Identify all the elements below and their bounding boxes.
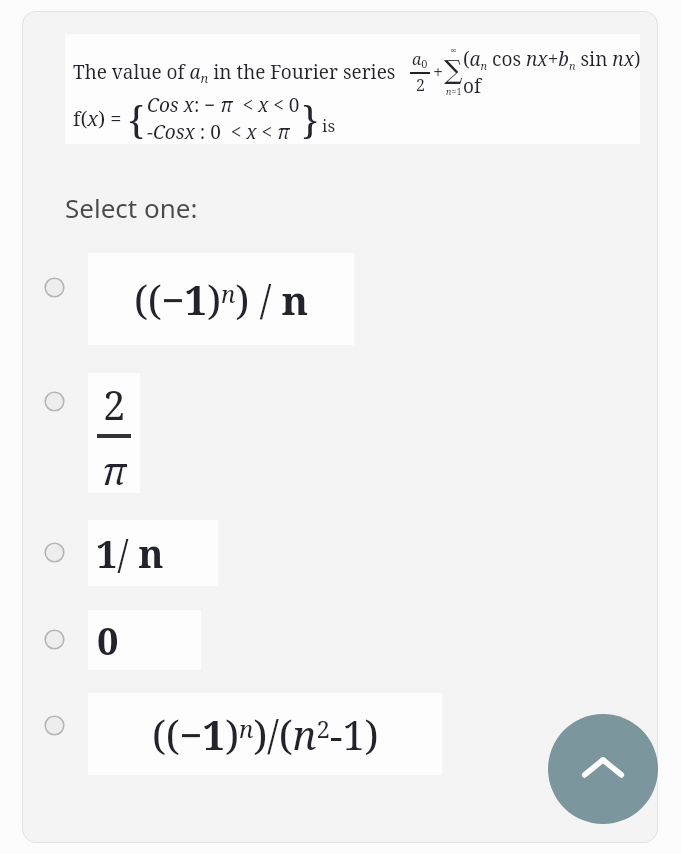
staticText: 2 xyxy=(416,74,425,96)
staticText: a0 xyxy=(412,48,428,72)
staticText: Select one: xyxy=(65,190,198,225)
staticText: n=1 xyxy=(446,85,462,97)
staticText: } xyxy=(302,93,319,145)
staticText: 1/ n xyxy=(96,527,164,579)
staticText: is xyxy=(322,114,336,137)
staticText: Cos x: − π < x < 0 xyxy=(147,92,300,118)
button[interactable]: ((−1)n)/(n2-1) xyxy=(22,693,658,775)
staticText: (an cos nx+bn sin nx) of xyxy=(463,46,648,99)
staticText: ∑ xyxy=(444,55,463,85)
staticText: ∞ xyxy=(450,46,457,55)
staticText: f(x) = xyxy=(73,105,122,132)
staticText: π xyxy=(102,444,127,493)
button[interactable]: 0 xyxy=(22,610,658,670)
button[interactable]: 2 xyxy=(22,373,658,493)
staticText: { xyxy=(128,93,145,145)
staticText: ((−1)n)/(n2-1) xyxy=(152,707,379,761)
staticText: 0 xyxy=(97,614,119,666)
staticText: 2 xyxy=(103,377,126,431)
staticText: + xyxy=(433,60,444,85)
staticText: ((−1)n) / n xyxy=(134,272,309,326)
button[interactable]: Scroll to top xyxy=(548,714,658,824)
button[interactable]: 1/ n xyxy=(22,520,658,586)
staticText: The value of an in the Fourier series xyxy=(73,59,396,87)
staticText: −Cosx : 0 < x < π xyxy=(147,119,290,145)
button[interactable]: ((−1)n) / n xyxy=(22,253,658,345)
